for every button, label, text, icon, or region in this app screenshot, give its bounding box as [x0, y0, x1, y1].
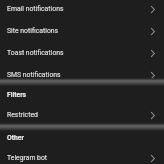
button[interactable]: Site notifications: [0, 20, 164, 42]
staticText: Filters: [7, 91, 27, 99]
button[interactable]: Email notifications: [0, 0, 164, 20]
staticText: Restricted: [7, 111, 149, 119]
staticText: Email notifications: [7, 5, 149, 13]
button[interactable]: Toast notifications: [0, 42, 164, 64]
staticText: SMS notifications: [7, 71, 149, 79]
staticText: Other: [7, 134, 24, 142]
button[interactable]: Telegram bot: [0, 147, 164, 164]
staticText: Telegram bot: [7, 154, 149, 162]
staticText: Site notifications: [7, 27, 149, 35]
button[interactable]: SMS notifications: [0, 64, 164, 86]
button[interactable]: Restricted: [0, 104, 164, 126]
staticText: Toast notifications: [7, 49, 149, 57]
